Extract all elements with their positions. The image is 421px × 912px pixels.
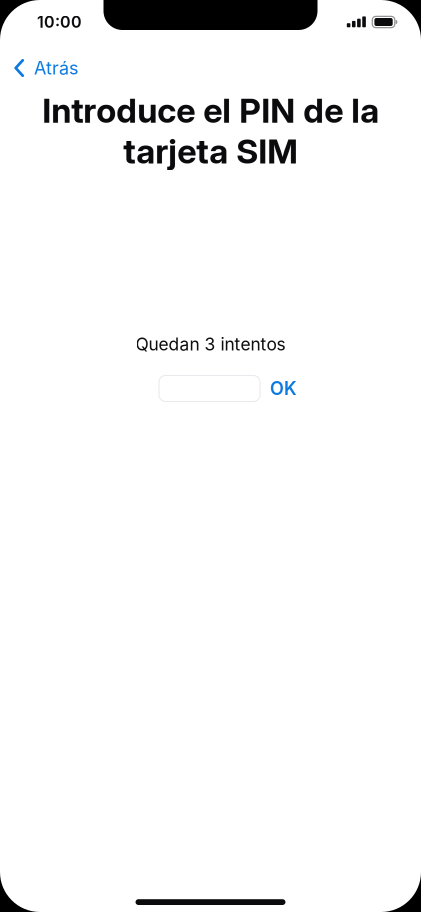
button[interactable]: OK xyxy=(260,374,303,403)
staticText: Quedan 3 intentos xyxy=(135,334,285,355)
button[interactable]: Código PIN xyxy=(159,375,260,401)
staticText: Atrás xyxy=(34,57,79,79)
staticText: OK xyxy=(270,378,297,399)
staticText: Introduce el PIN de la tarjeta SIM xyxy=(42,90,379,172)
button[interactable]: Atrás xyxy=(0,43,91,84)
staticText: 10:00 xyxy=(37,12,82,32)
